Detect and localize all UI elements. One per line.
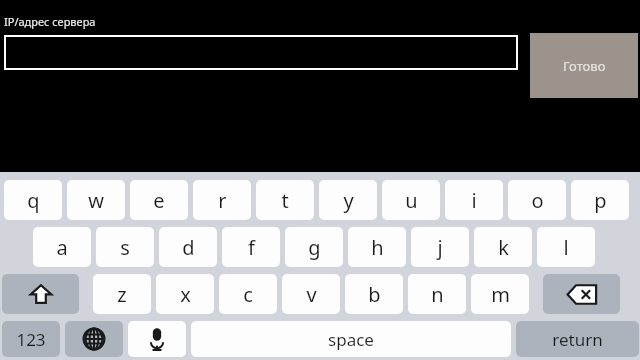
button[interactable]: c [219,274,277,314]
staticText: b [368,281,381,308]
staticText: l [563,234,569,261]
button[interactable]: w [67,180,125,220]
button[interactable]: q [4,180,62,220]
button[interactable]: o [508,180,566,220]
staticText: w [88,187,104,214]
button[interactable]: p [571,180,629,220]
staticText: r [218,187,227,214]
staticText: s [120,234,130,261]
button[interactable]: e [130,180,188,220]
staticText: Готово [563,57,606,75]
button[interactable]: v [282,274,340,314]
button[interactable]: Backspace [543,274,620,314]
staticText: f [248,234,255,261]
staticText: j [437,234,443,261]
button[interactable]: y [319,180,377,220]
button[interactable]: t [256,180,314,220]
button[interactable]: a [33,227,91,267]
staticText: t [281,187,289,214]
staticText: i [471,187,477,214]
staticText: v [306,281,317,308]
staticText: z [117,281,127,308]
button[interactable]: x [156,274,214,314]
button[interactable]: s [96,227,154,267]
button[interactable]: i [445,180,503,220]
button[interactable]: return [516,321,639,357]
button[interactable]: r [193,180,251,220]
button[interactable]: u [382,180,440,220]
button[interactable]: Change keyboard [65,321,123,357]
button[interactable]: b [345,274,403,314]
button[interactable]: d [159,227,217,267]
staticText: n [431,281,444,308]
staticText: space [328,328,374,351]
button[interactable]: n [408,274,466,314]
button[interactable]: h [348,227,406,267]
staticText: k [498,234,509,261]
button[interactable]: 123 [2,321,60,357]
staticText: c [243,281,253,308]
staticText: return [552,328,603,351]
button[interactable]: Готово [530,33,638,98]
staticText: 123 [16,328,46,351]
button[interactable]: f [222,227,280,267]
staticText: y [343,187,354,214]
button[interactable]: Shift [2,274,79,314]
staticText: g [308,234,321,261]
button[interactable]: z [93,274,151,314]
staticText: p [594,187,607,214]
button[interactable]: k [474,227,532,267]
staticText: o [531,187,544,214]
button[interactable] [4,35,518,70]
staticText: a [56,234,68,261]
staticText: h [371,234,384,261]
button[interactable]: m [471,274,529,314]
button[interactable]: j [411,227,469,267]
staticText: d [182,234,195,261]
button[interactable]: g [285,227,343,267]
button[interactable]: l [537,227,595,267]
staticText: x [180,281,191,308]
staticText: IP/адрес сервера [4,14,96,29]
staticText: u [405,187,418,214]
button[interactable]: Dictate [128,321,186,357]
staticText: q [27,187,40,214]
staticText: e [153,187,165,214]
button[interactable]: space [191,321,511,357]
staticText: m [491,281,510,308]
